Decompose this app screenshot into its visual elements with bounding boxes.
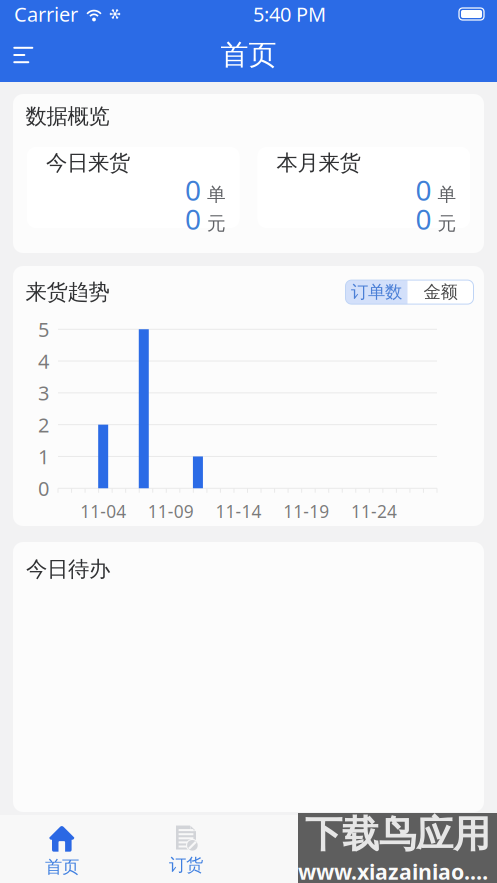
- button[interactable]: 订货: [124, 815, 248, 883]
- staticText: 0: [185, 171, 201, 209]
- staticText: 11-04: [80, 500, 126, 523]
- staticText: 订单数: [351, 281, 402, 303]
- staticText: 4: [38, 348, 49, 374]
- staticText: 5: [38, 316, 49, 343]
- staticText: 金额: [423, 281, 457, 303]
- staticText: 0: [415, 200, 431, 238]
- staticText: 3: [38, 380, 49, 406]
- staticText: 2: [38, 411, 49, 438]
- staticText: 来货趋势: [26, 279, 110, 305]
- staticText: 1: [38, 443, 49, 470]
- staticText: 本月来货: [276, 150, 360, 176]
- staticText: 11-09: [148, 500, 194, 523]
- staticText: 元: [437, 212, 456, 235]
- staticText: 下载鸟应用: [305, 811, 490, 857]
- button[interactable]: Menu: [0, 32, 51, 78]
- staticText: 数据概览: [26, 103, 110, 130]
- staticText: 单: [437, 183, 456, 206]
- staticText: 5:40 PM: [253, 1, 326, 27]
- staticText: Carrier: [14, 1, 78, 27]
- staticText: www.xiazainiao.com: [298, 857, 497, 883]
- staticText: 首页: [45, 856, 79, 878]
- staticText: 0: [415, 171, 431, 209]
- button[interactable]: 金额: [407, 280, 473, 304]
- staticText: 11-24: [351, 500, 397, 523]
- staticText: 0: [185, 200, 201, 238]
- staticText: 单: [207, 183, 226, 206]
- button[interactable]: 首页: [0, 815, 124, 883]
- staticText: 11-14: [215, 500, 261, 523]
- staticText: 订货: [169, 854, 203, 876]
- staticText: 元: [207, 212, 226, 235]
- staticText: 首页: [220, 38, 276, 72]
- button[interactable]: 订单数: [345, 280, 407, 304]
- staticText: 0: [38, 475, 49, 502]
- staticText: 今日待办: [26, 556, 110, 582]
- staticText: 今日来货: [46, 150, 130, 176]
- staticText: 11-19: [283, 500, 329, 523]
